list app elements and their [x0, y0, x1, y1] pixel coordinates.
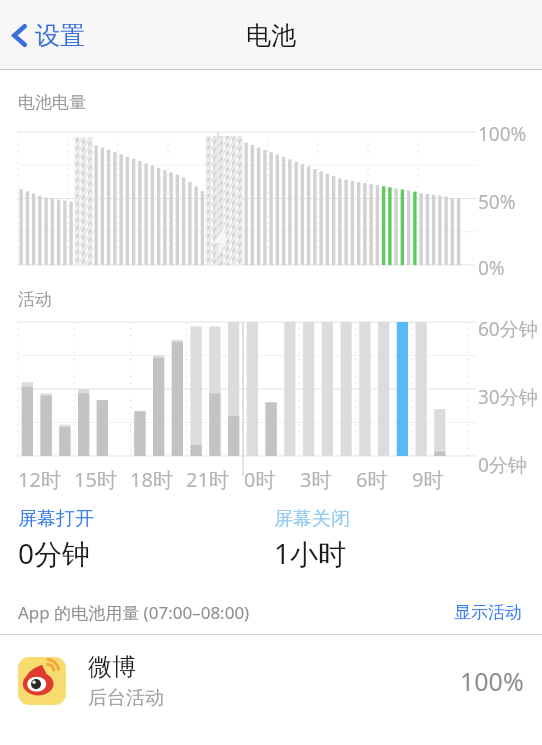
staticText: 9时	[412, 466, 444, 493]
staticText: 0%	[478, 255, 505, 277]
button[interactable]: 显示活动	[452, 600, 524, 625]
staticText: 电池	[246, 20, 296, 51]
other: 微博	[18, 657, 66, 705]
button[interactable]: 微博	[0, 635, 542, 727]
staticText: 15时	[74, 466, 117, 493]
staticText: 100%	[460, 664, 524, 698]
staticText: 0分钟	[478, 452, 527, 478]
staticText: 屏幕关闭	[274, 507, 350, 531]
staticText: 活动	[18, 289, 52, 310]
staticText: 30分钟	[478, 384, 538, 410]
staticText: 0时	[244, 466, 276, 493]
staticText: 100%	[478, 121, 527, 147]
staticText: 0分钟	[18, 534, 91, 572]
staticText: 显示活动	[454, 602, 522, 623]
staticText: 18时	[130, 466, 173, 493]
staticText: 3时	[300, 466, 332, 493]
staticText: 1小时	[274, 534, 347, 572]
staticText: App 的电池用量 (07:00–08:00)	[18, 601, 250, 624]
staticText: 微博	[88, 652, 136, 682]
staticText: 电池电量	[18, 92, 86, 113]
staticText: 12时	[18, 466, 61, 493]
staticText: 6时	[356, 466, 388, 493]
staticText: 屏幕打开	[18, 507, 94, 531]
staticText: 设置	[35, 20, 85, 51]
staticText: 60分钟	[478, 316, 538, 342]
button[interactable]: 设置	[4, 12, 93, 59]
staticText: 后台活动	[88, 686, 164, 710]
staticText: 50%	[478, 189, 516, 215]
staticText: 21时	[186, 466, 229, 493]
